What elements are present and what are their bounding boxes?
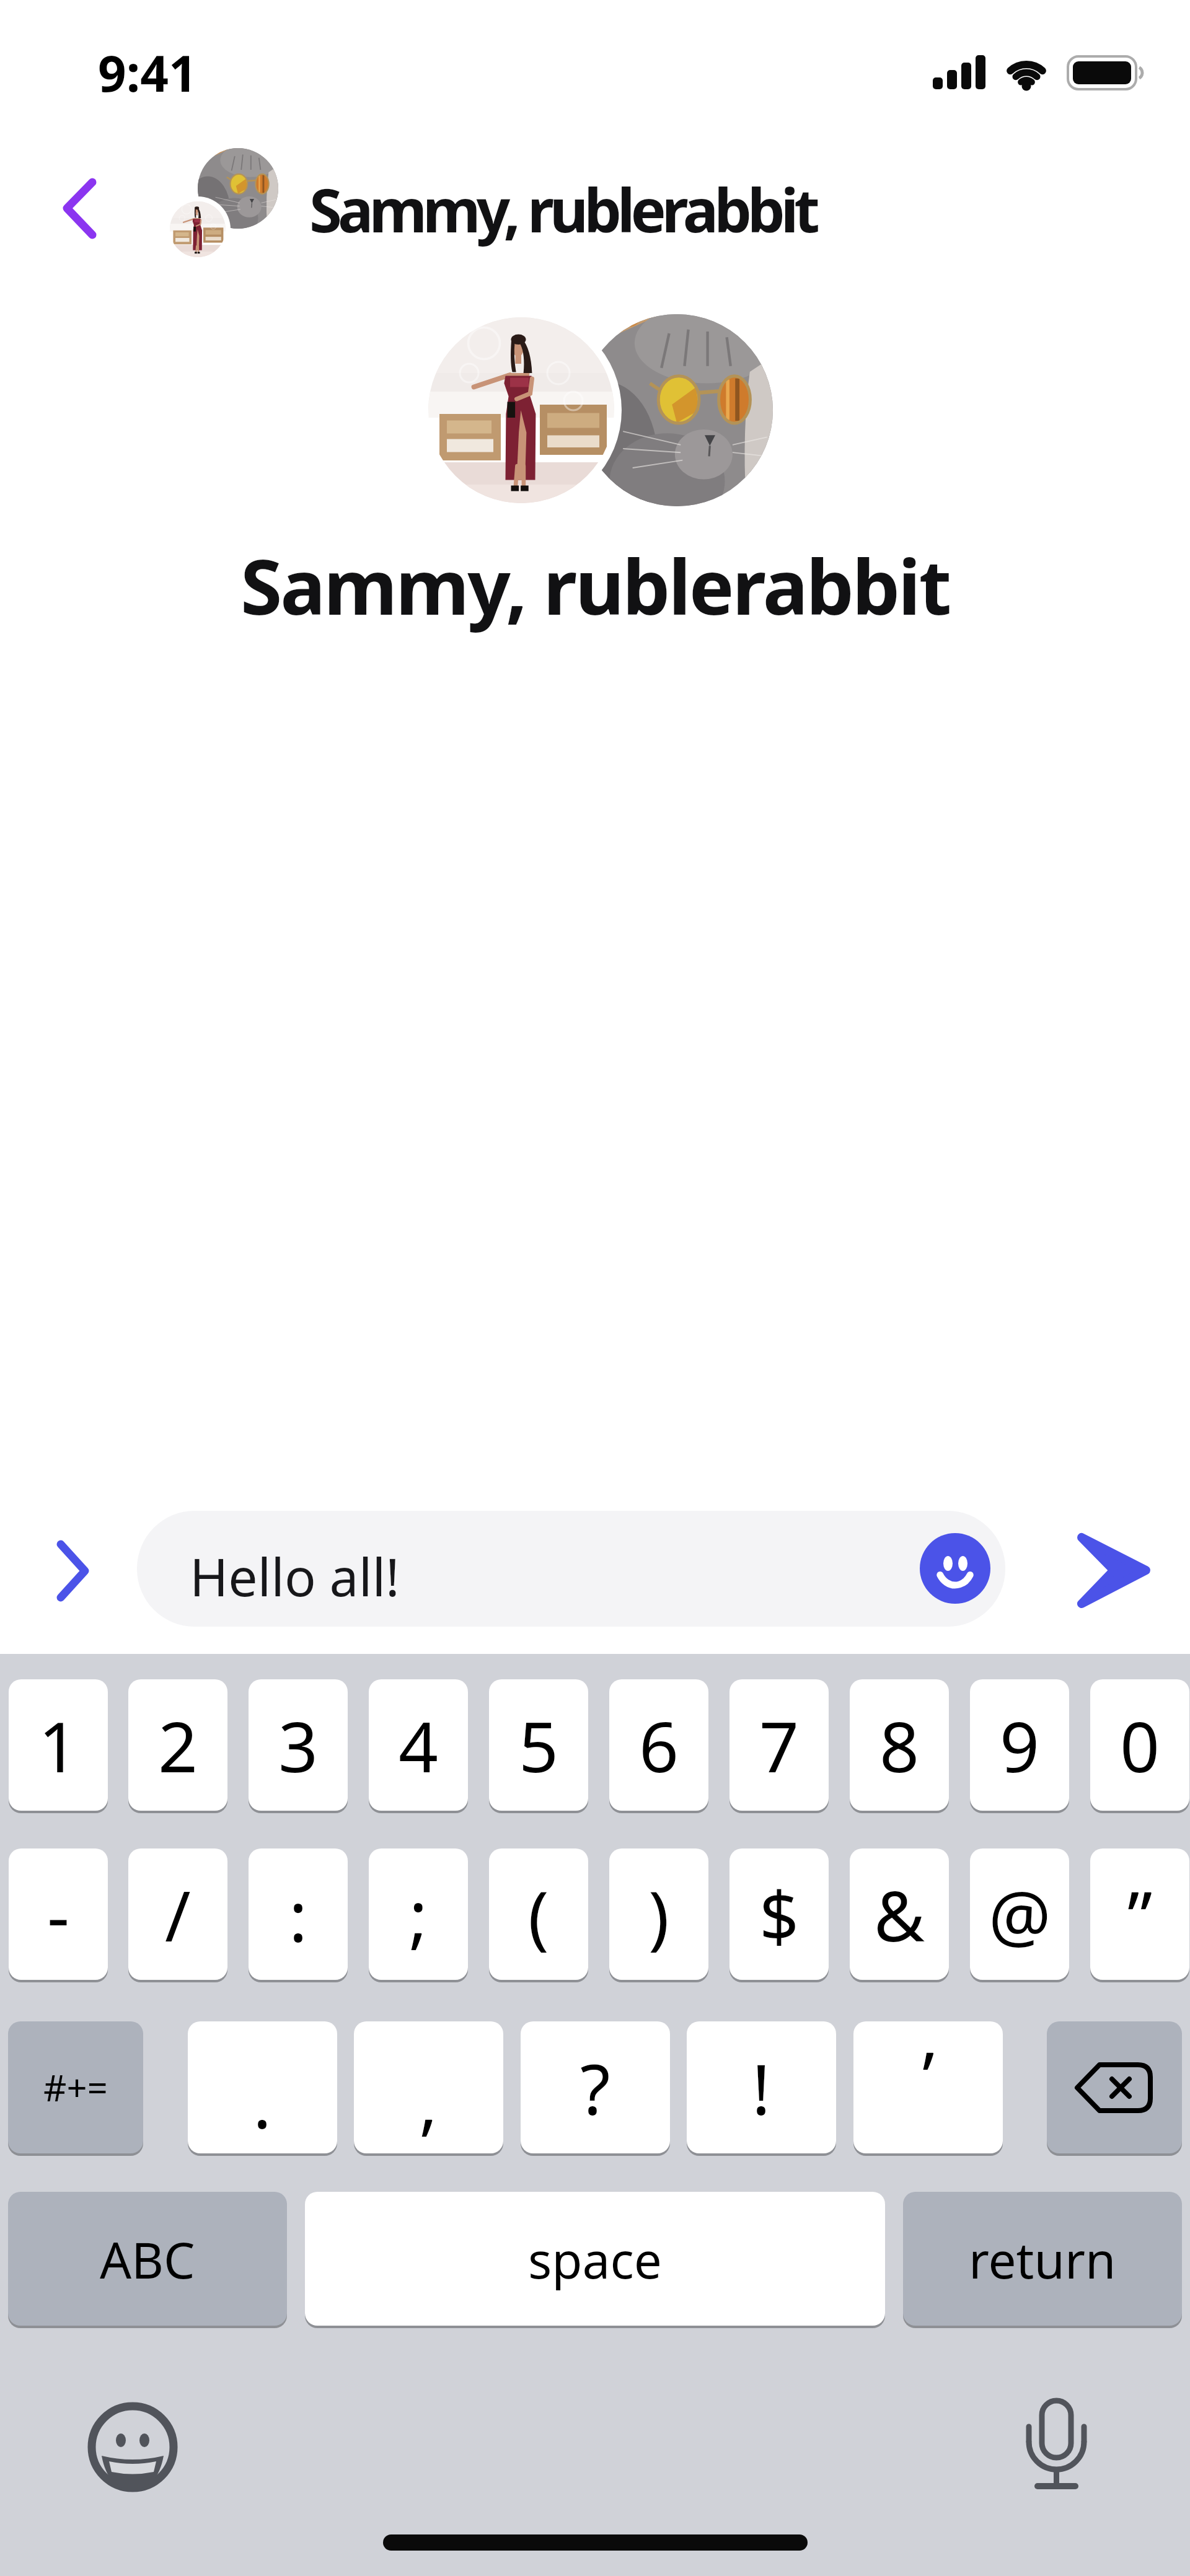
staticText: 5	[519, 1698, 559, 1793]
button[interactable]: 8	[850, 1679, 949, 1811]
button[interactable]: ”	[1090, 1848, 1189, 1980]
button[interactable]	[1064, 1523, 1160, 1619]
staticText: 2	[158, 1698, 198, 1793]
staticText: 3	[278, 1698, 319, 1793]
button[interactable]: -	[9, 1848, 108, 1980]
staticText: (	[528, 1867, 549, 1962]
button[interactable]: !	[687, 2021, 836, 2153]
staticText: &	[874, 1867, 925, 1962]
staticText: /	[165, 1867, 191, 1962]
staticText: return	[969, 2225, 1116, 2293]
staticText: space	[528, 2225, 662, 2293]
staticText: ;	[409, 1867, 428, 1962]
button[interactable]: ;	[369, 1848, 468, 1980]
button[interactable]: .	[188, 2021, 337, 2153]
staticText: ’	[922, 2028, 935, 2122]
staticText: Hello all!	[190, 1541, 400, 1611]
staticText: $	[759, 1867, 800, 1962]
button[interactable]	[55, 170, 117, 245]
staticText: 8	[879, 1698, 920, 1793]
button[interactable]: &	[850, 1848, 949, 1980]
staticText: -	[47, 1867, 70, 1962]
staticText: 9	[1000, 1698, 1040, 1793]
button[interactable]: Hello all!	[137, 1511, 1005, 1627]
button[interactable]: @	[970, 1848, 1069, 1980]
button[interactable]: ABC	[8, 2192, 287, 2326]
button[interactable]: return	[903, 2192, 1182, 2326]
staticText: ?	[580, 2040, 610, 2135]
button[interactable]: 1	[9, 1679, 108, 1811]
staticText: 0	[1120, 1698, 1160, 1793]
button[interactable]: #+=	[8, 2021, 143, 2153]
staticText: .	[253, 2054, 272, 2148]
button[interactable]: ?	[521, 2021, 670, 2153]
staticText: :	[289, 1867, 308, 1962]
button[interactable]	[1047, 2021, 1182, 2153]
button[interactable]: )	[609, 1848, 708, 1980]
staticText: 7	[759, 1698, 800, 1793]
staticText: Sammy, rublerabbit	[240, 534, 950, 637]
staticText: @	[989, 1867, 1051, 1962]
button[interactable]: :	[249, 1848, 348, 1980]
staticText: 4	[399, 1698, 439, 1793]
button[interactable]: 5	[489, 1679, 588, 1811]
button[interactable]	[157, 146, 281, 273]
staticText: ABC	[100, 2225, 195, 2293]
button[interactable]: ,	[354, 2021, 503, 2153]
staticText: Sammy, rublerabbit	[309, 169, 816, 250]
button[interactable]: 0	[1090, 1679, 1189, 1811]
button[interactable]: 4	[369, 1679, 468, 1811]
button[interactable]: $	[729, 1848, 829, 1980]
button[interactable]: 3	[249, 1679, 348, 1811]
button[interactable]	[920, 1533, 990, 1604]
button[interactable]: 2	[128, 1679, 227, 1811]
staticText: ,	[419, 2054, 438, 2148]
button[interactable]: (	[489, 1848, 588, 1980]
button[interactable]: ’	[853, 2021, 1003, 2153]
staticText: ”	[1127, 1867, 1153, 1962]
staticText: 9:41	[98, 38, 197, 106]
button[interactable]	[87, 2401, 178, 2493]
staticText: #+=	[43, 2063, 108, 2112]
button[interactable]: 6	[609, 1679, 708, 1811]
staticText: )	[648, 1867, 669, 1962]
button[interactable]: space	[305, 2192, 885, 2326]
button[interactable]	[43, 1531, 105, 1611]
staticText: 6	[639, 1698, 679, 1793]
button[interactable]: /	[128, 1848, 227, 1980]
button[interactable]: 7	[729, 1679, 829, 1811]
staticText: 1	[38, 1698, 79, 1793]
button[interactable]: 9	[970, 1679, 1069, 1811]
button[interactable]	[1010, 2397, 1103, 2493]
staticText: !	[752, 2040, 771, 2135]
